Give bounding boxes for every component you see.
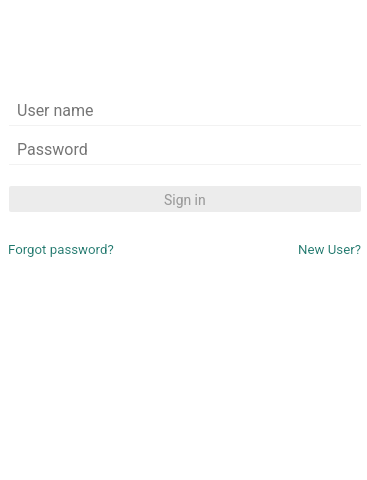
- staticText: User name: [17, 101, 94, 120]
- staticText: Forgot password?: [8, 242, 114, 258]
- button[interactable]: Forgot password?: [8, 242, 114, 258]
- button[interactable]: Sign in: [9, 186, 361, 212]
- staticText: Password: [17, 140, 88, 159]
- staticText: Sign in: [164, 192, 206, 208]
- button[interactable]: User name: [0, 101, 367, 133]
- button[interactable]: New User?: [298, 242, 361, 258]
- staticText: New User?: [298, 242, 361, 258]
- button[interactable]: Password: [0, 140, 367, 172]
